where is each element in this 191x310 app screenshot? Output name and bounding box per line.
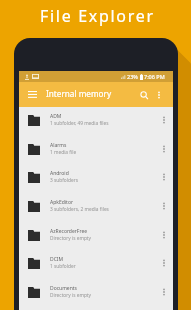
staticText: 1 media file: [50, 149, 77, 156]
staticText: 1 subfolder, 49 media files: [50, 120, 109, 127]
button[interactable]: Options for DCIM: [157, 256, 171, 270]
staticText: 1 subfolder: [50, 263, 76, 270]
button[interactable]: Options for ADM: [157, 113, 171, 127]
button[interactable]: ADM: [19, 106, 173, 134]
staticText: Documents: [50, 285, 77, 292]
staticText: AzRecorderFree: [50, 228, 88, 235]
button[interactable]: Alarms: [19, 135, 173, 163]
staticText: File Explorer: [40, 5, 155, 27]
button[interactable]: Options for Documents: [157, 285, 171, 299]
staticText: 23%: [127, 73, 138, 80]
staticText: 7:06 PM: [144, 73, 165, 80]
button[interactable]: Options for AzRecorderFree: [157, 228, 171, 242]
staticText: Directory is empty: [50, 235, 92, 242]
staticText: 3 subfolders, 2 media files: [50, 206, 109, 213]
staticText: ADM: [50, 113, 62, 120]
button[interactable]: Options for Android: [157, 170, 171, 184]
staticText: Internal memory: [46, 88, 112, 99]
button[interactable]: Android: [19, 163, 173, 191]
button[interactable]: More options: [153, 89, 165, 101]
staticText: Alarms: [50, 142, 67, 149]
button[interactable]: AzRecorderFree: [19, 221, 173, 249]
staticText: DCIM: [50, 256, 64, 263]
button[interactable]: DCIM: [19, 249, 173, 277]
staticText: Android: [50, 170, 69, 177]
button[interactable]: Open navigation menu: [25, 87, 39, 101]
button[interactable]: Search: [137, 88, 151, 102]
staticText: Directory is empty: [50, 292, 92, 299]
button[interactable]: Documents: [19, 278, 173, 306]
button[interactable]: Options for Alarms: [157, 142, 171, 156]
staticText: 3 subfolders: [50, 177, 78, 184]
button[interactable]: Options for ApkEditor: [157, 199, 171, 213]
button[interactable]: ApkEditor: [19, 192, 173, 220]
staticText: ApkEditor: [50, 199, 73, 206]
